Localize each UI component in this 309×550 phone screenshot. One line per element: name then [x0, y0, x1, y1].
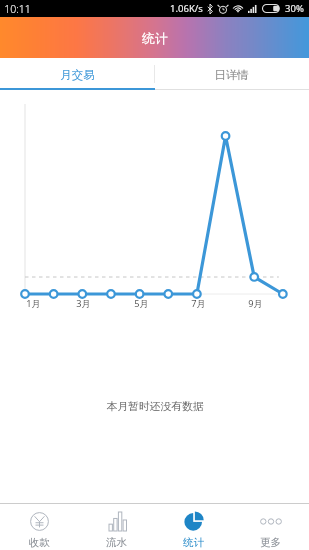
button[interactable]: 统计 — [155, 504, 232, 550]
staticText: 更多 — [260, 536, 281, 549]
button[interactable]: 更多 — [232, 504, 309, 550]
button[interactable]: 流水 — [78, 504, 155, 550]
staticText: 本月暂时还没有数据 — [106, 400, 204, 414]
staticText: 月交易 — [60, 68, 95, 82]
staticText: 流水 — [106, 536, 127, 549]
staticText: 10:11 — [4, 2, 31, 16]
staticText: 1月 — [26, 297, 41, 310]
staticText: 30% — [285, 2, 304, 15]
button[interactable]: 月交易 — [0, 58, 154, 90]
staticText: 统计 — [142, 30, 168, 46]
button[interactable]: 收款 — [0, 504, 78, 550]
staticText: 5月 — [134, 297, 149, 310]
button[interactable]: 日详情 — [154, 58, 309, 90]
staticText: 统计 — [183, 536, 204, 549]
staticText: 3月 — [76, 297, 91, 310]
staticText: 收款 — [29, 536, 50, 549]
staticText: 1.06K/s — [170, 2, 203, 15]
staticText: 日详情 — [214, 68, 249, 82]
staticText: 7月 — [191, 297, 206, 310]
staticText: 9月 — [248, 297, 263, 310]
